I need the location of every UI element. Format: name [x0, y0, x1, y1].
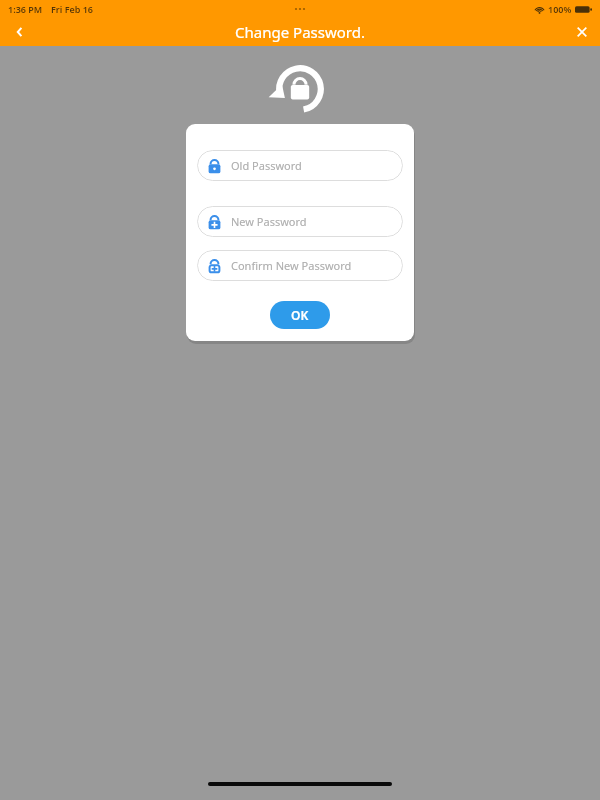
- staticText: 1:36 PM: [8, 3, 43, 15]
- button[interactable]: Confirm New Password: [197, 250, 403, 281]
- staticText: Confirm New Password: [231, 258, 352, 273]
- staticText: New Password: [231, 214, 307, 229]
- button[interactable]: Close: [564, 18, 600, 46]
- staticText: Old Password: [231, 158, 302, 173]
- button[interactable]: Old Password: [197, 150, 403, 181]
- staticText: OK: [291, 307, 309, 323]
- staticText: Fri Feb 16: [51, 3, 94, 15]
- staticText: 100%: [548, 3, 572, 15]
- button[interactable]: OK: [270, 301, 330, 329]
- button[interactable]: New Password: [197, 206, 403, 237]
- button[interactable]: Back: [0, 18, 40, 46]
- staticText: Change Password.: [235, 22, 365, 42]
